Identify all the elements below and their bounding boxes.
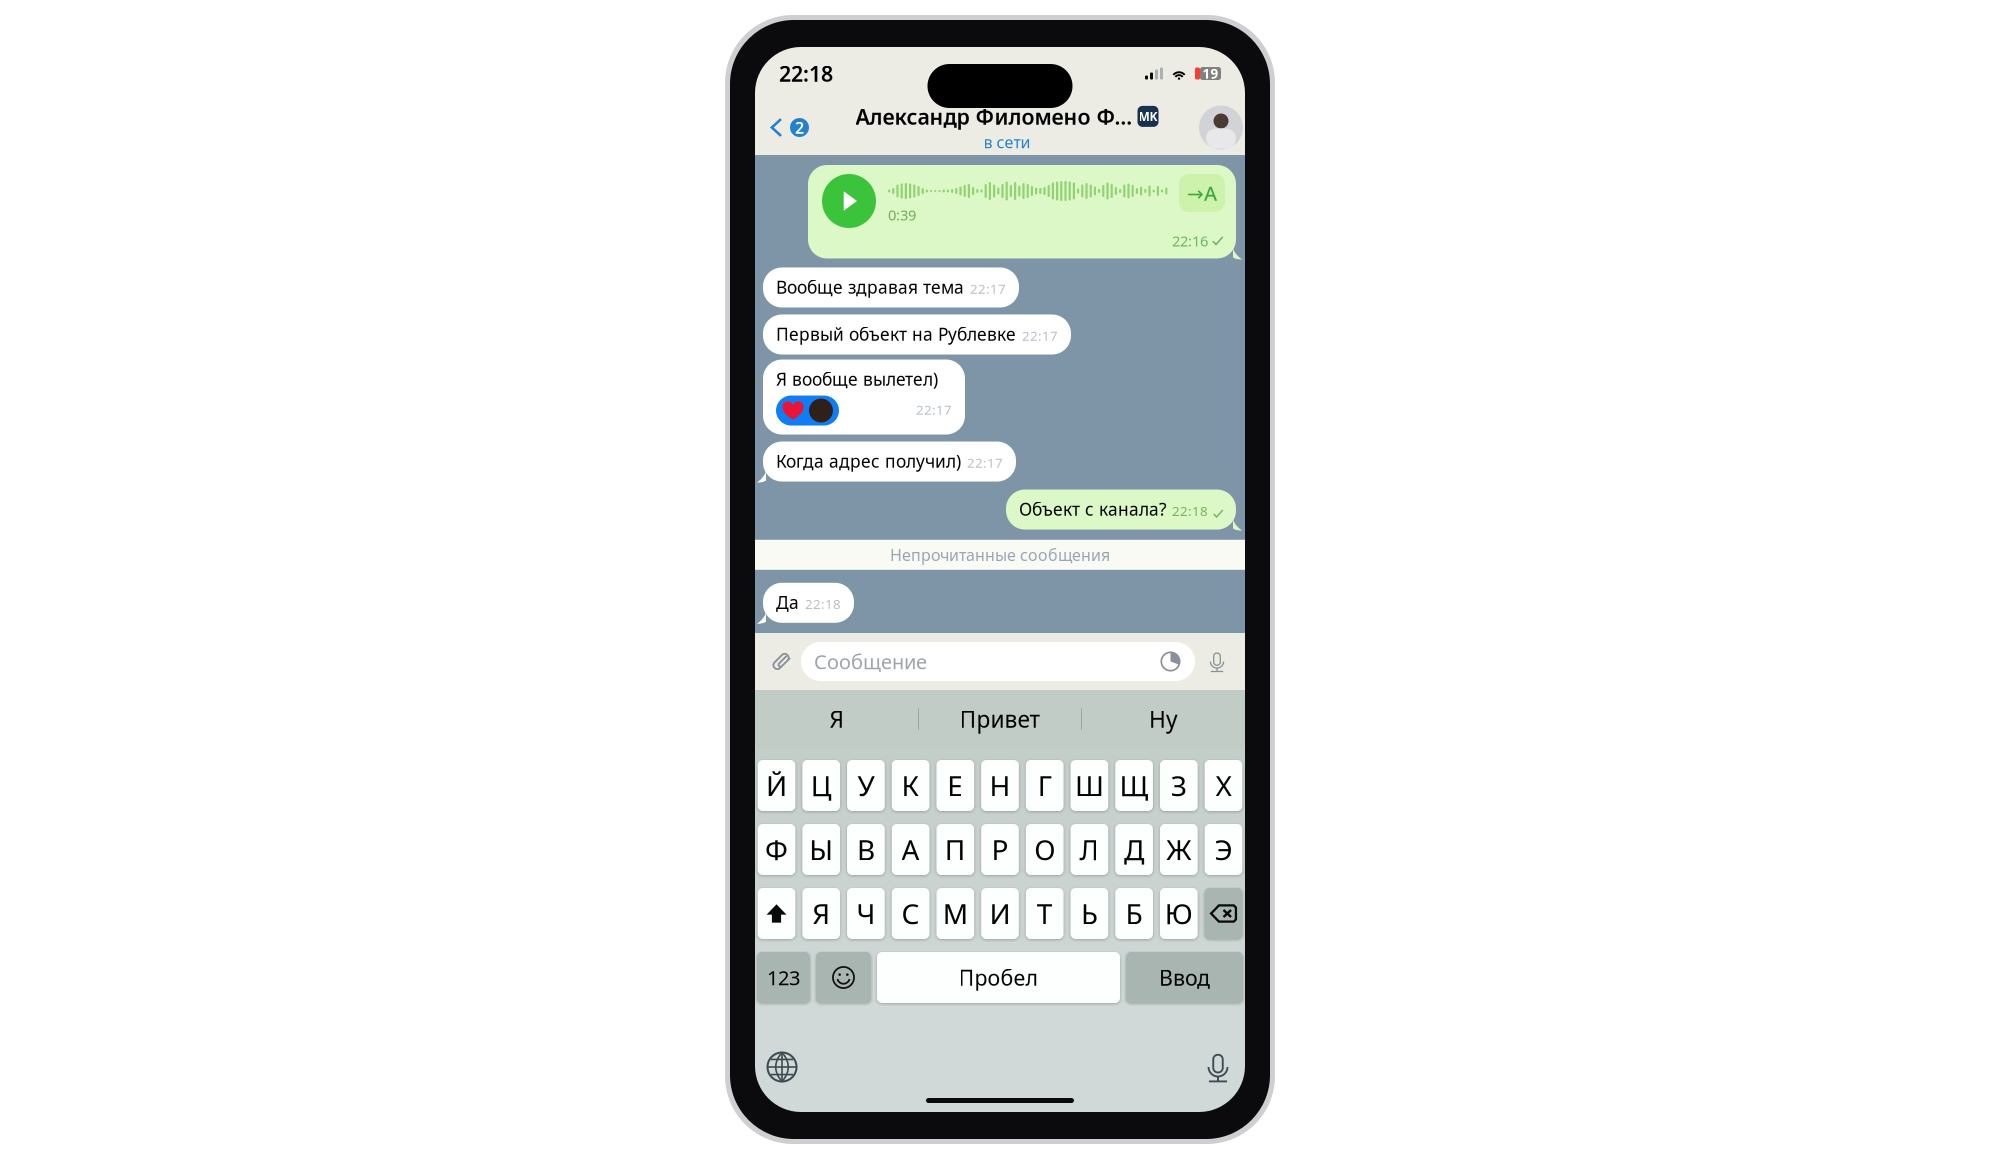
button[interactable]: И xyxy=(981,888,1019,939)
button[interactable]: Профиль xyxy=(1199,105,1243,149)
button[interactable]: З xyxy=(1160,760,1198,811)
staticText: Ввод xyxy=(1159,963,1210,992)
button[interactable]: Ц xyxy=(802,760,840,811)
staticText: 22:17 xyxy=(970,280,1006,297)
button[interactable]: П xyxy=(936,824,974,875)
staticText: Непрочитанные сообщения xyxy=(890,544,1110,565)
button[interactable]: Я xyxy=(755,690,918,748)
button[interactable]: Э xyxy=(1205,824,1242,875)
button[interactable]: Голосовое сообщение xyxy=(1195,639,1239,683)
staticText: Ну xyxy=(1149,704,1178,734)
button[interactable]: Стикеры xyxy=(1159,650,1182,673)
staticText: Е xyxy=(947,767,963,804)
button[interactable]: Сменить язык xyxy=(760,1046,804,1088)
staticText: Р xyxy=(991,831,1008,868)
staticText: Когда адрес получил) xyxy=(776,449,961,472)
staticText: В xyxy=(857,831,875,868)
button[interactable]: 123 xyxy=(757,952,810,1003)
staticText: Г xyxy=(1038,767,1052,804)
button[interactable]: М xyxy=(936,888,974,939)
staticText: Привет xyxy=(959,704,1040,734)
button[interactable]: Щ xyxy=(1115,760,1153,811)
staticText: 22:18 xyxy=(779,59,833,88)
staticText: 22:17 xyxy=(967,454,1003,471)
staticText: Л xyxy=(1079,831,1099,868)
staticText: Ю xyxy=(1165,895,1193,932)
staticText: Ж xyxy=(1166,831,1191,868)
button[interactable]: Ну xyxy=(1082,690,1245,748)
staticText: Да xyxy=(776,591,799,614)
button[interactable]: Удалить xyxy=(1205,888,1242,939)
staticText: Александр Филомено Ф… xyxy=(855,102,1132,130)
staticText: 19 xyxy=(1202,65,1218,82)
button[interactable]: О xyxy=(1026,824,1064,875)
button[interactable]: Й xyxy=(758,760,795,811)
staticText: →A xyxy=(1187,180,1217,206)
staticText: Н xyxy=(989,767,1010,804)
button[interactable]: Г xyxy=(1026,760,1064,811)
staticText: Э xyxy=(1214,831,1232,868)
button[interactable]: С xyxy=(892,888,929,939)
staticText: Т xyxy=(1037,895,1053,932)
staticText: Ш xyxy=(1075,767,1104,804)
button[interactable]: Д xyxy=(1115,824,1153,875)
staticText: Ч xyxy=(856,895,875,932)
button[interactable]: Прикрепить xyxy=(761,639,801,683)
button[interactable]: Ш xyxy=(1071,760,1108,811)
staticText: Щ xyxy=(1120,767,1149,804)
button[interactable]: Пробел xyxy=(877,952,1120,1003)
button[interactable]: А xyxy=(892,824,929,875)
button[interactable]: Р xyxy=(981,824,1019,875)
staticText: А xyxy=(902,831,920,868)
button[interactable]: Ы xyxy=(802,824,840,875)
staticText: П xyxy=(945,831,966,868)
staticText: И xyxy=(989,895,1010,932)
button[interactable]: Е xyxy=(936,760,974,811)
staticText: У xyxy=(857,767,874,804)
staticText: 22:18 xyxy=(805,595,841,613)
staticText: Сообщение xyxy=(814,648,927,675)
button[interactable]: Эмодзи xyxy=(816,952,871,1003)
button[interactable]: Ввод xyxy=(1126,952,1243,1003)
staticText: Х xyxy=(1215,767,1231,804)
staticText: в сети xyxy=(983,131,1030,153)
button[interactable]: Н xyxy=(981,760,1019,811)
staticText: 123 xyxy=(767,964,800,991)
button[interactable]: В xyxy=(847,824,885,875)
staticText: З xyxy=(1171,767,1187,804)
button[interactable]: У xyxy=(847,760,885,811)
staticText: Первый объект на Рублевке xyxy=(776,322,1016,345)
button[interactable]: Ф xyxy=(758,824,795,875)
button[interactable]: Привет xyxy=(919,690,1081,748)
button[interactable]: Shift xyxy=(758,888,795,939)
staticText: К xyxy=(902,767,920,804)
button[interactable]: Ч xyxy=(847,888,885,939)
button[interactable]: Х xyxy=(1205,760,1242,811)
button[interactable]: 2 xyxy=(761,105,815,149)
staticText: М xyxy=(943,895,968,932)
staticText: Й xyxy=(766,767,787,804)
button[interactable]: Ь xyxy=(1071,888,1108,939)
staticText: 22:17 xyxy=(1022,327,1058,344)
staticText: Д xyxy=(1124,831,1144,868)
staticText: 22:18 xyxy=(1172,502,1208,520)
button[interactable]: Я xyxy=(802,888,840,939)
staticText: С xyxy=(902,895,920,932)
staticText: О xyxy=(1034,831,1055,868)
staticText: MK xyxy=(1138,108,1157,124)
staticText: 0:39 xyxy=(888,205,916,224)
staticText: Я xyxy=(812,895,830,932)
staticText: Ц xyxy=(811,767,832,804)
staticText: Ы xyxy=(809,831,833,868)
button[interactable]: Диктовка xyxy=(1196,1046,1240,1088)
button[interactable]: Ж xyxy=(1160,824,1198,875)
button[interactable]: К xyxy=(892,760,929,811)
button[interactable]: Ю xyxy=(1160,888,1198,939)
staticText: Объект с канала? xyxy=(1019,497,1167,520)
button[interactable]: Л xyxy=(1071,824,1108,875)
staticText: Вообще здравая тема xyxy=(776,275,964,298)
staticText: Пробел xyxy=(958,963,1038,992)
button[interactable]: Б xyxy=(1115,888,1153,939)
button[interactable]: Т xyxy=(1026,888,1064,939)
staticText: Б xyxy=(1126,895,1143,932)
